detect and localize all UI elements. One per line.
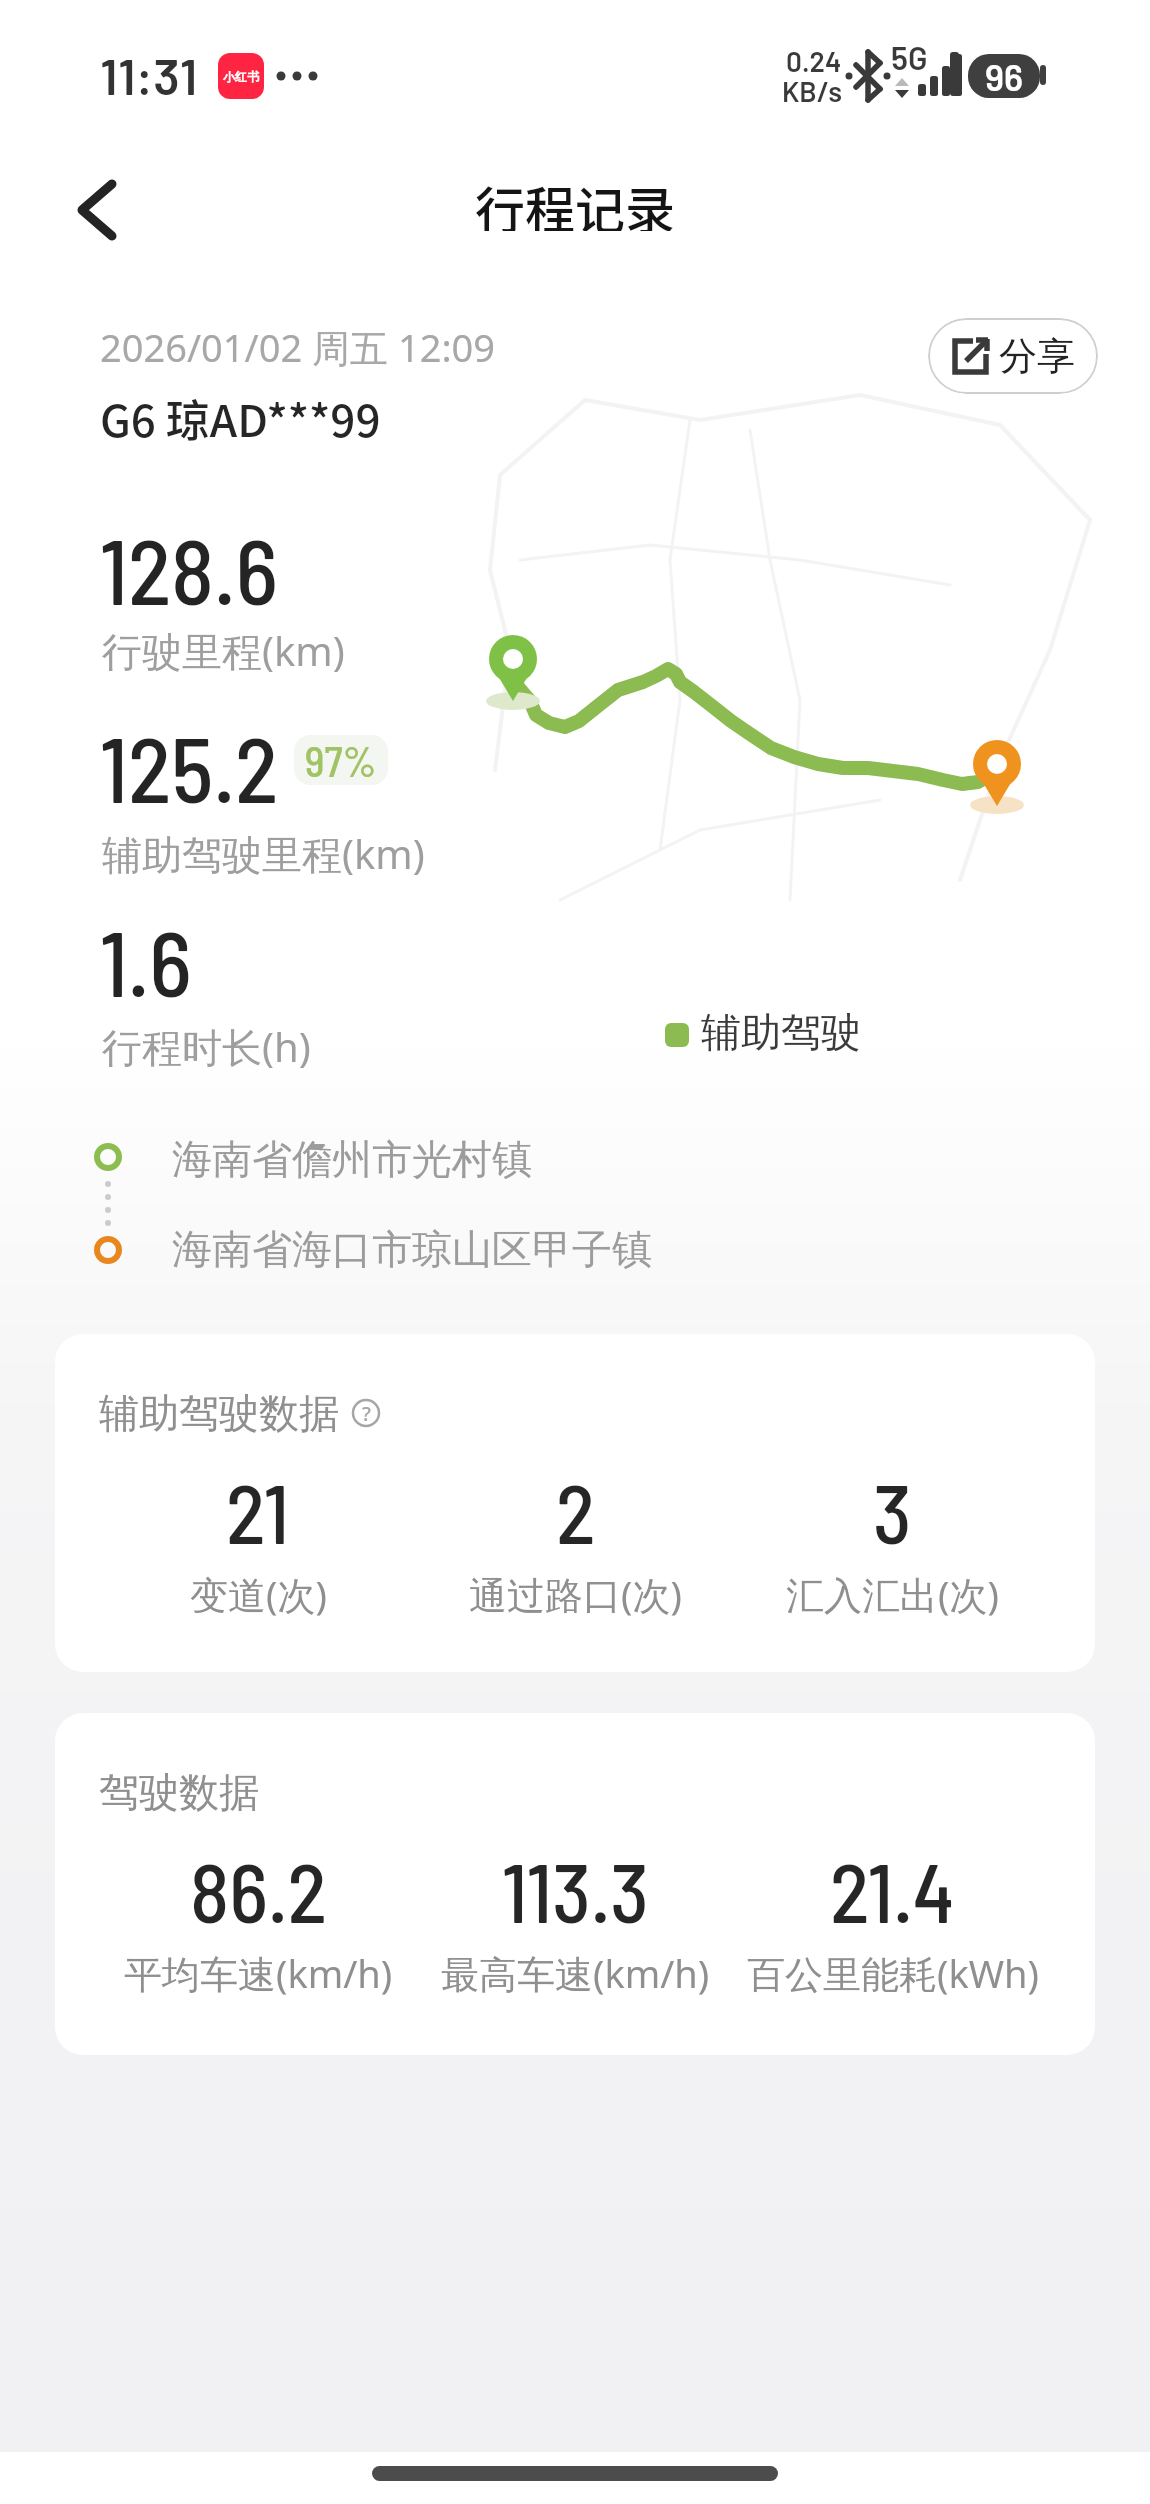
staticText: 海南省儋州市光村镇 bbox=[172, 1134, 532, 1184]
staticText: ? bbox=[362, 1400, 371, 1427]
staticText: 125.2 bbox=[100, 713, 279, 821]
staticText: KB/s bbox=[782, 74, 842, 108]
staticText: 1.6 bbox=[100, 907, 192, 1015]
button[interactable]: 分享 bbox=[928, 318, 1098, 394]
staticText: 海南省海口市琼山区甲子镇 bbox=[172, 1224, 652, 1274]
staticText: 21.4 bbox=[830, 1841, 955, 1939]
staticText: 128.6 bbox=[100, 515, 279, 623]
staticText: 行驶里程(km) bbox=[102, 623, 345, 678]
staticText: 97% bbox=[305, 735, 377, 785]
staticText: 86.2 bbox=[190, 1841, 327, 1939]
staticText: G6 琼AD***99 bbox=[100, 386, 381, 450]
staticText: 21 bbox=[226, 1462, 290, 1560]
staticText: 113.3 bbox=[502, 1841, 649, 1939]
staticText: 2 bbox=[556, 1462, 596, 1560]
button[interactable]: ? bbox=[351, 1398, 381, 1428]
button[interactable]: 辅助驾驶数据 bbox=[55, 1334, 1095, 1672]
staticText: 行程记录 bbox=[475, 171, 675, 231]
staticText: 小红书 bbox=[223, 69, 259, 84]
staticText: 11:31 bbox=[100, 45, 198, 105]
staticText: 辅助驾驶数据 bbox=[99, 1388, 339, 1438]
staticText: 平均车速(km/h) bbox=[124, 1947, 393, 1999]
staticText: 驾驶数据 bbox=[99, 1767, 259, 1817]
staticText: 分享 bbox=[999, 332, 1075, 380]
staticText: 5G bbox=[891, 38, 928, 76]
staticText: 0.24 bbox=[786, 44, 842, 78]
staticText: 辅助驾驶 bbox=[701, 1007, 861, 1057]
staticText: 3 bbox=[873, 1462, 912, 1560]
staticText: 辅助驾驶里程(km) bbox=[102, 826, 425, 881]
staticText: 96 bbox=[985, 55, 1024, 98]
button[interactable]: 驾驶数据 bbox=[55, 1713, 1095, 2055]
button[interactable] bbox=[70, 180, 120, 240]
staticText: 通过路口(次) bbox=[469, 1568, 682, 1620]
staticText: 变道(次) bbox=[190, 1568, 327, 1620]
staticText: 行程时长(h) bbox=[102, 1019, 311, 1074]
staticText: 最高车速(km/h) bbox=[441, 1947, 710, 1999]
staticText: 百公里能耗(kWh) bbox=[747, 1947, 1039, 1999]
staticText: 汇入汇出(次) bbox=[786, 1568, 999, 1620]
staticText: 2026/01/02 周五 12:09 bbox=[100, 321, 496, 373]
